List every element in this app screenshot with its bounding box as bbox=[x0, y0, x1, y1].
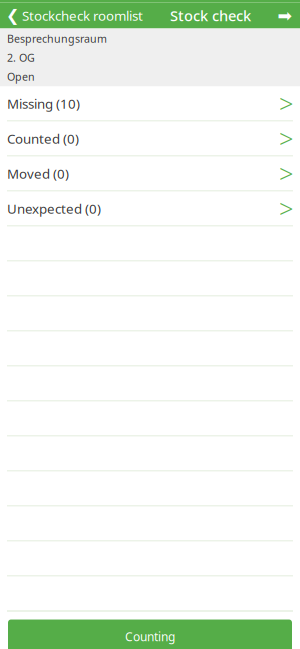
staticText: Counting bbox=[125, 628, 175, 644]
staticText: > bbox=[279, 192, 293, 225]
staticText: Open bbox=[7, 69, 35, 84]
staticText: > bbox=[279, 87, 293, 120]
button[interactable]: Counting bbox=[8, 619, 292, 649]
staticText: Besprechungsraum bbox=[7, 31, 107, 46]
staticText: Moved (0) bbox=[7, 165, 69, 182]
button[interactable]: Log out bbox=[270, 2, 300, 28]
staticText: Unexpected (0) bbox=[7, 200, 101, 217]
button[interactable]: Counted (0) bbox=[0, 121, 300, 156]
staticText: Missing (10) bbox=[7, 95, 80, 112]
button[interactable]: Unexpected (0) bbox=[0, 191, 300, 226]
button[interactable]: Moved (0) bbox=[0, 156, 300, 191]
button[interactable]: Missing (10) bbox=[0, 86, 300, 121]
staticText: 2. OG bbox=[7, 50, 35, 65]
staticText: Stock check bbox=[170, 6, 251, 25]
staticText: ➡ bbox=[277, 6, 292, 25]
staticText: Stockcheck roomlist bbox=[22, 7, 143, 24]
staticText: > bbox=[279, 122, 293, 155]
button[interactable]: ❮ bbox=[0, 2, 151, 28]
staticText: Counted (0) bbox=[7, 130, 79, 147]
staticText: ❮ bbox=[6, 6, 19, 25]
staticText: > bbox=[279, 157, 293, 190]
